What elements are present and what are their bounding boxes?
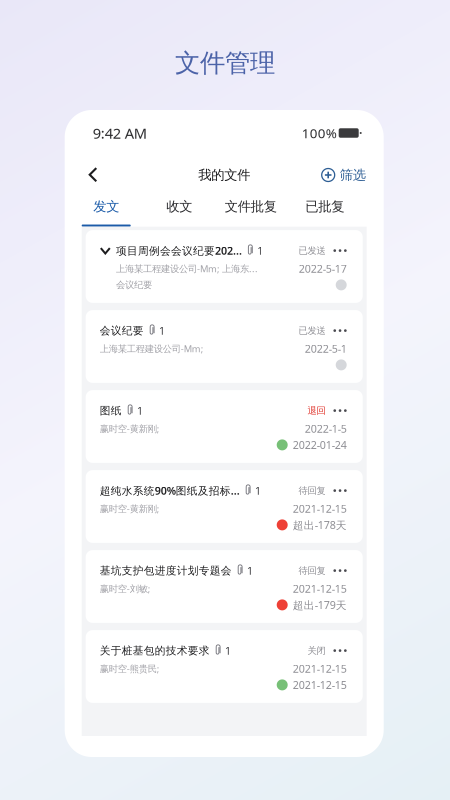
staticText: 赢时空-熊贵民; [100, 662, 160, 675]
staticText: 上海某工程建设公司-Mm; 上海东... [116, 262, 258, 275]
staticText: 发文 [93, 198, 119, 215]
staticText: 赢时空-黄新刚; [100, 422, 160, 435]
staticText: 待回复 [298, 485, 325, 496]
button[interactable]: 会议纪要 [86, 310, 363, 383]
staticText: 2021-12-15 [293, 661, 347, 676]
staticText: 关于桩基包的技术要求 [100, 644, 210, 657]
button[interactable]: 筛选 [322, 161, 366, 189]
staticText: 2022-5-1 [305, 341, 347, 356]
button[interactable]: 收文 [155, 195, 204, 227]
button[interactable]: 超纯水系统90%图纸及招标... [86, 470, 363, 543]
staticText: 1 [255, 483, 261, 498]
staticText: 2021-12-15 [293, 501, 347, 516]
staticText: 已发送 [298, 245, 325, 256]
staticText: 退回 [307, 405, 325, 416]
staticText: 1 [225, 643, 231, 658]
staticText: 1 [137, 403, 143, 418]
button[interactable]: 文件批复 [219, 195, 283, 227]
staticText: 赢时空-刘敏; [100, 582, 151, 595]
staticText: 2021-12-15 [293, 678, 347, 692]
staticText: 1 [247, 563, 253, 578]
staticText: 已发送 [298, 325, 325, 336]
staticText: 会议纪要 [100, 324, 144, 337]
button[interactable]: 项目周例会会议纪要202... [86, 230, 363, 303]
staticText: 超出-179天 [293, 598, 347, 612]
staticText: 2022-5-17 [299, 261, 347, 276]
button[interactable]: 已批复 [299, 195, 351, 227]
staticText: 项目周例会会议纪要202... [116, 243, 242, 258]
staticText: 图纸 [100, 404, 122, 417]
button[interactable]: 基坑支护包进度计划专题会 [86, 550, 363, 623]
staticText: 1 [257, 243, 263, 258]
staticText: 基坑支护包进度计划专题会 [100, 564, 232, 577]
staticText: 收文 [166, 198, 192, 215]
staticText: 100% [302, 124, 337, 142]
staticText: 1 [159, 323, 165, 338]
staticText: 2022-01-24 [293, 438, 347, 452]
staticText: 待回复 [298, 565, 325, 576]
staticText: 关闭 [307, 645, 325, 656]
staticText: 筛选 [340, 167, 366, 183]
staticText: 2022-1-5 [305, 421, 347, 436]
staticText: 会议纪要 [116, 279, 152, 291]
staticText: 上海某工程建设公司-Mm; [100, 342, 204, 355]
button[interactable]: Back [83, 159, 104, 190]
staticText: 2021-12-15 [293, 581, 347, 596]
staticText: 超纯水系统90%图纸及招标... [100, 483, 240, 498]
button[interactable]: 发文 [82, 195, 131, 227]
button[interactable]: 关于桩基包的技术要求 [86, 630, 363, 703]
staticText: 文件批复 [225, 198, 277, 215]
staticText: 我的文件 [198, 167, 250, 183]
staticText: 9:42 AM [93, 123, 147, 143]
staticText: 超出-178天 [293, 518, 347, 532]
staticText: 赢时空-黄新刚; [100, 502, 160, 515]
staticText: 文件管理 [175, 47, 275, 78]
button[interactable]: 图纸 [86, 390, 363, 463]
staticText: 已批复 [305, 198, 344, 215]
